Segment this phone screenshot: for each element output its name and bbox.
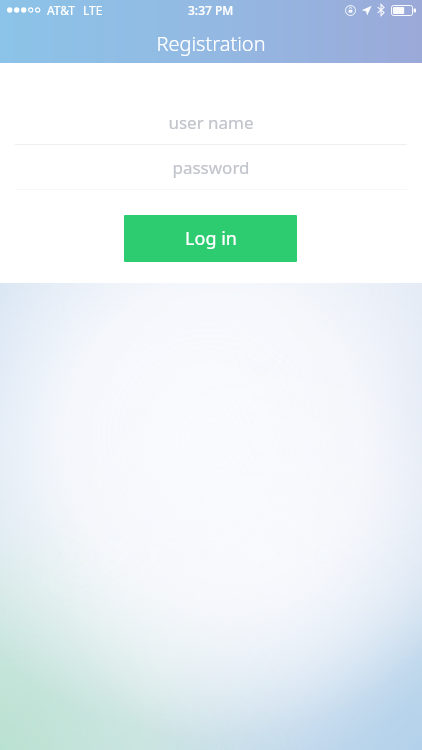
staticText: Log in [185,226,237,251]
staticText: AT&T [47,2,75,18]
other: Location [361,5,372,16]
button[interactable]: Log in [124,215,297,262]
other: Rotation lock [345,5,356,16]
staticText: Registration [0,30,422,57]
staticText: LTE [83,2,103,18]
button[interactable]: user name [0,100,422,144]
staticText: user name [168,111,254,134]
staticText: 3:37 PM [188,2,234,18]
button[interactable]: password [0,145,422,189]
staticText: password [172,156,250,179]
other: Bluetooth [377,4,385,16]
